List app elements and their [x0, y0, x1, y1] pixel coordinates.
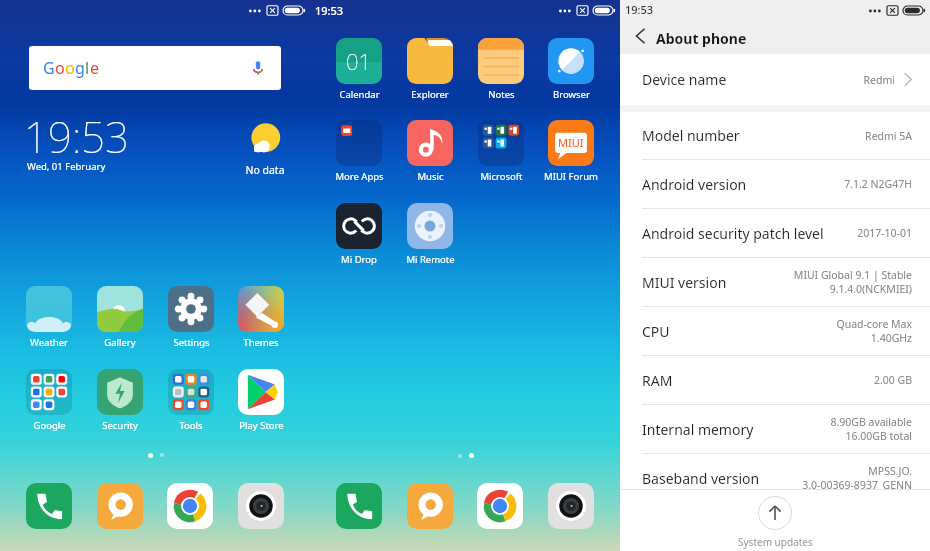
staticText: 16.00GB total [845, 429, 912, 443]
button[interactable]: Explorer [394, 38, 466, 101]
staticText: 2.00 GB [873, 373, 912, 387]
button[interactable]: No data [232, 120, 298, 177]
staticText: 7.1.2 N2G47H [844, 177, 912, 191]
button[interactable]: More Apps [323, 120, 395, 183]
staticText: Calendar [339, 88, 380, 101]
staticText: Themes [243, 336, 279, 349]
staticText: g [75, 57, 85, 79]
staticText: Redmi [863, 73, 895, 87]
staticText: MIUI Global 9.1 | Stable [793, 268, 912, 282]
staticText: Notes [488, 88, 515, 101]
button[interactable]: Internal memory [620, 405, 930, 453]
button[interactable]: Baseband version [620, 454, 930, 502]
staticText: Music [417, 170, 444, 183]
staticText: Baseband version [642, 469, 760, 488]
staticText: MPSS.JO. [868, 464, 912, 478]
staticText: Explorer [411, 88, 449, 101]
button[interactable] [407, 483, 453, 529]
button[interactable] [26, 483, 72, 529]
staticText: Weather [30, 336, 68, 349]
staticText: Play Store [239, 419, 284, 432]
staticText: 19:53 [24, 108, 130, 165]
button[interactable]: Settings [155, 286, 227, 349]
button[interactable]: Weather [13, 286, 85, 349]
button[interactable]: Microsoft [465, 120, 537, 183]
staticText: 19:53 [625, 2, 654, 17]
staticText: MIUI [558, 135, 584, 150]
button[interactable]: Mi Remote [394, 203, 466, 266]
button[interactable]: Notes [465, 38, 537, 101]
staticText: Gallery [104, 336, 136, 349]
button[interactable]: CPU [620, 307, 930, 355]
staticText: CPU [642, 322, 670, 341]
button[interactable]: Android security patch level [620, 209, 930, 257]
staticText: e [90, 57, 100, 79]
button[interactable]: Voice search [249, 59, 267, 77]
button[interactable]: 01 [323, 38, 395, 101]
button[interactable]: G [29, 46, 281, 90]
staticText: More Apps [335, 170, 384, 183]
button[interactable]: Play Store [225, 369, 297, 432]
button[interactable]: MIUI [535, 120, 607, 183]
button[interactable] [548, 483, 594, 529]
button[interactable]: Gallery [84, 286, 156, 349]
button[interactable]: Back [626, 22, 654, 50]
staticText: 3.0-00369-8937_GENN [802, 478, 912, 492]
staticText: RAM [642, 371, 673, 390]
button[interactable]: Themes [225, 286, 297, 349]
button[interactable] [336, 483, 382, 529]
button[interactable]: System updates [620, 489, 930, 551]
staticText: Redmi 5A [865, 129, 912, 143]
staticText: Settings [173, 336, 210, 349]
staticText: Google [33, 419, 66, 432]
staticText: Security [102, 419, 138, 432]
staticText: Android security patch level [642, 224, 824, 243]
staticText: o [65, 57, 75, 79]
staticText: 1.40GHz [870, 331, 912, 345]
button[interactable]: Tools [155, 369, 227, 432]
staticText: Quad-core Max [836, 317, 912, 331]
staticText: MIUI Forum [544, 170, 598, 183]
staticText: Device name [642, 70, 727, 89]
button[interactable]: Model number [620, 112, 930, 159]
button[interactable]: Android version [620, 160, 930, 208]
button[interactable]: Google [13, 369, 85, 432]
button[interactable]: Security [84, 369, 156, 432]
staticText: MIUI version [642, 273, 727, 292]
staticText: G [43, 57, 55, 79]
button[interactable] [477, 483, 523, 529]
button[interactable]: Device name [620, 54, 930, 105]
staticText: Wed, 01 February [27, 160, 106, 173]
staticText: Android version [642, 175, 747, 194]
staticText: No data [245, 163, 285, 177]
button[interactable] [238, 483, 284, 529]
staticText: Mi Drop [341, 253, 377, 266]
staticText: 9.1.4.0(NCKMIEI) [829, 282, 912, 296]
staticText: Model number [642, 126, 740, 145]
staticText: Browser [553, 88, 590, 101]
staticText: 19:53 [315, 3, 344, 18]
staticText: o [55, 57, 65, 79]
staticText: 8.90GB available [830, 415, 912, 429]
staticText: Tools [179, 419, 203, 432]
button[interactable]: Mi Drop [323, 203, 395, 266]
staticText: l [85, 57, 90, 79]
button[interactable] [167, 483, 213, 529]
staticText: Microsoft [480, 170, 523, 183]
button[interactable]: Music [394, 120, 466, 183]
staticText: 2017-10-01 [857, 226, 912, 240]
button[interactable] [97, 483, 143, 529]
button[interactable]: RAM [620, 356, 930, 404]
staticText: 01 [346, 46, 372, 76]
staticText: Mi Remote [406, 253, 455, 266]
staticText: About phone [656, 29, 747, 48]
staticText: Internal memory [642, 420, 754, 439]
button[interactable]: Browser [535, 38, 607, 101]
button[interactable]: MIUI version [620, 258, 930, 306]
staticText: System updates [738, 535, 813, 549]
